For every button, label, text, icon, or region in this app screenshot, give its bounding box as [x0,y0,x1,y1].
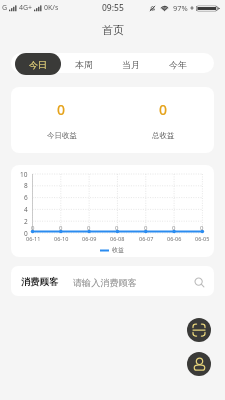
staticText: 0 [200,224,204,232]
button[interactable]: 0 [11,87,112,153]
staticText: 06-06 [167,235,182,242]
staticText: 0 [57,100,66,119]
button[interactable]: 本周 [61,55,107,74]
button[interactable]: 当月 [107,55,154,74]
staticText: 4 [24,205,28,214]
staticText: 0 [59,224,63,232]
staticText: 0 [159,100,168,119]
button[interactable]: 消费顾客 [11,266,214,296]
staticText: 06-09 [82,235,97,242]
staticText: 当月 [122,59,140,70]
staticText: 10 [20,170,28,179]
staticText: 总收益 [152,131,175,140]
staticText: 收益 [112,246,124,254]
staticText: 0 [24,229,28,238]
button[interactable]: 今年 [154,55,201,74]
staticText: 06-08 [110,235,125,242]
staticText: 8 [24,181,28,190]
button[interactable]: 今日 [15,53,61,75]
staticText: 06-05 [195,235,210,242]
button[interactable]: 0 [112,87,214,153]
staticText: 06-11 [26,235,41,242]
staticText: 0 [172,224,176,232]
staticText: 请输入消费顾客 [73,277,137,288]
staticText: 6 [24,193,28,202]
staticText: 06-10 [54,235,69,242]
staticText: 4G+ [19,3,33,13]
staticText: 0 [144,224,148,232]
staticText: 0K/s [44,3,59,13]
staticText: 消费顾客 [21,276,59,288]
staticText: 97% [173,3,188,13]
staticText: G [2,3,8,13]
staticText: 0 [87,224,91,232]
button[interactable]: 我的 [187,352,211,376]
staticText: 0 [31,224,35,232]
staticText: 本周 [75,59,93,70]
staticText: 今日 [29,59,47,70]
staticText: 0 [115,224,119,232]
button[interactable]: 扫一扫 [187,318,211,342]
staticText: 06-07 [139,235,154,242]
staticText: 今日收益 [47,131,77,140]
staticText: 今年 [169,59,187,70]
staticText: 2 [24,217,28,226]
staticText: 09:55 [102,2,124,14]
staticText: 首页 [102,23,124,37]
